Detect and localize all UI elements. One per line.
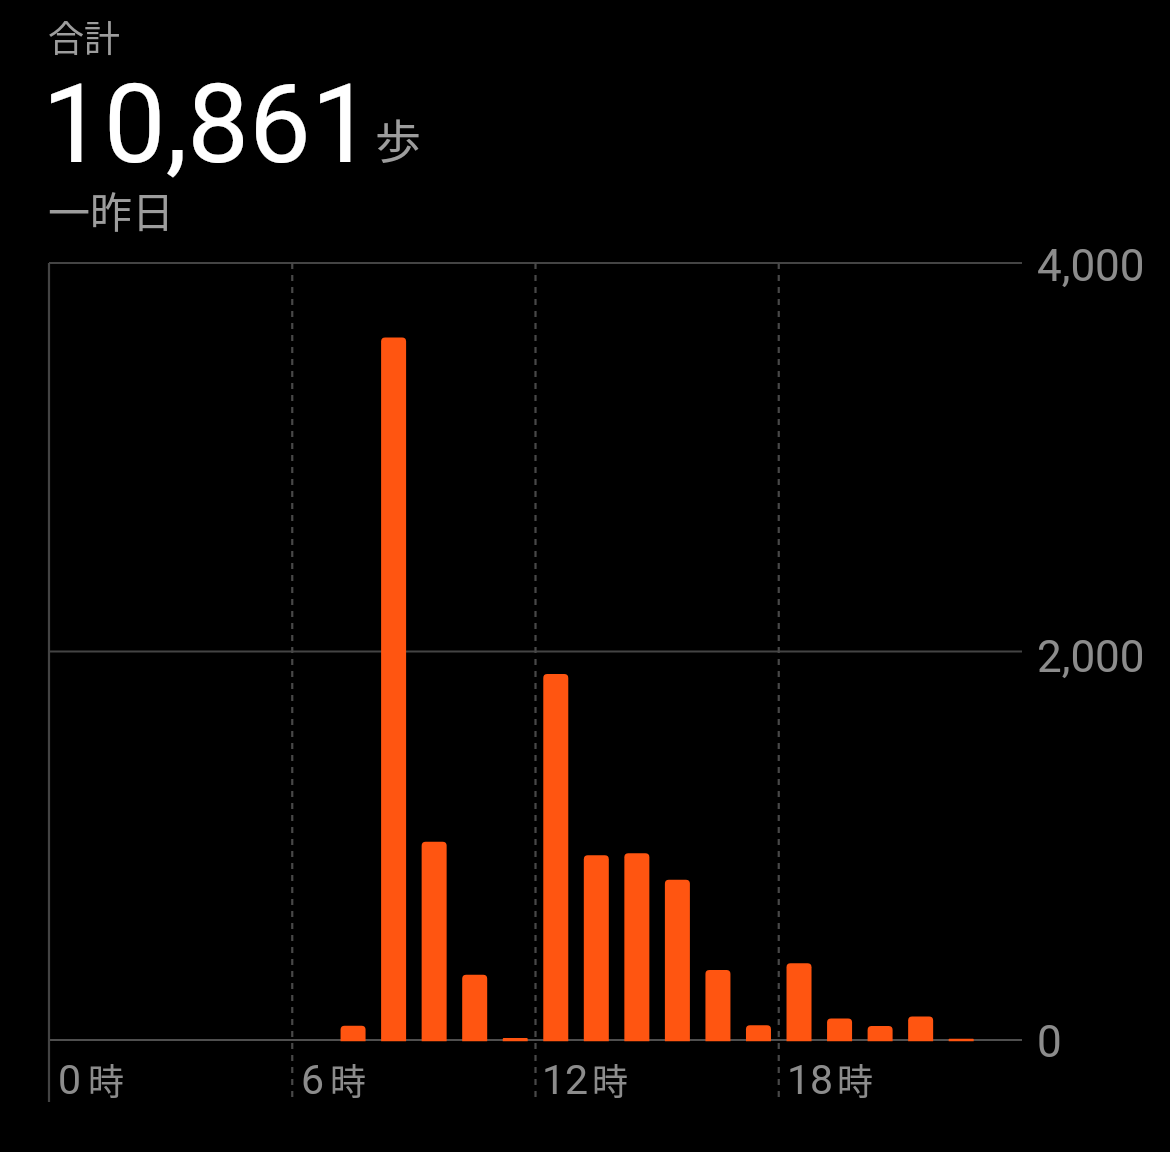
button[interactable] <box>40 4 440 244</box>
staticText: 18 <box>787 1056 834 1104</box>
staticText: 10,861 <box>42 60 373 189</box>
staticText: 時 <box>837 1053 874 1105</box>
staticText: 時 <box>88 1053 125 1105</box>
staticText: 0 <box>1037 1016 1062 1068</box>
staticText: 4,000 <box>1037 240 1145 292</box>
staticText: 歩 <box>375 105 421 172</box>
staticText: 合計 <box>48 10 121 62</box>
staticText: 時 <box>330 1053 367 1105</box>
staticText: 6 <box>301 1056 325 1104</box>
staticText: 0 <box>58 1056 82 1104</box>
staticText: 2,000 <box>1037 631 1145 683</box>
staticText: 12 <box>542 1056 589 1104</box>
staticText: 時 <box>592 1053 629 1105</box>
button[interactable]: Hourly step chart <box>0 250 1170 1120</box>
staticText: 一昨日 <box>48 179 175 240</box>
